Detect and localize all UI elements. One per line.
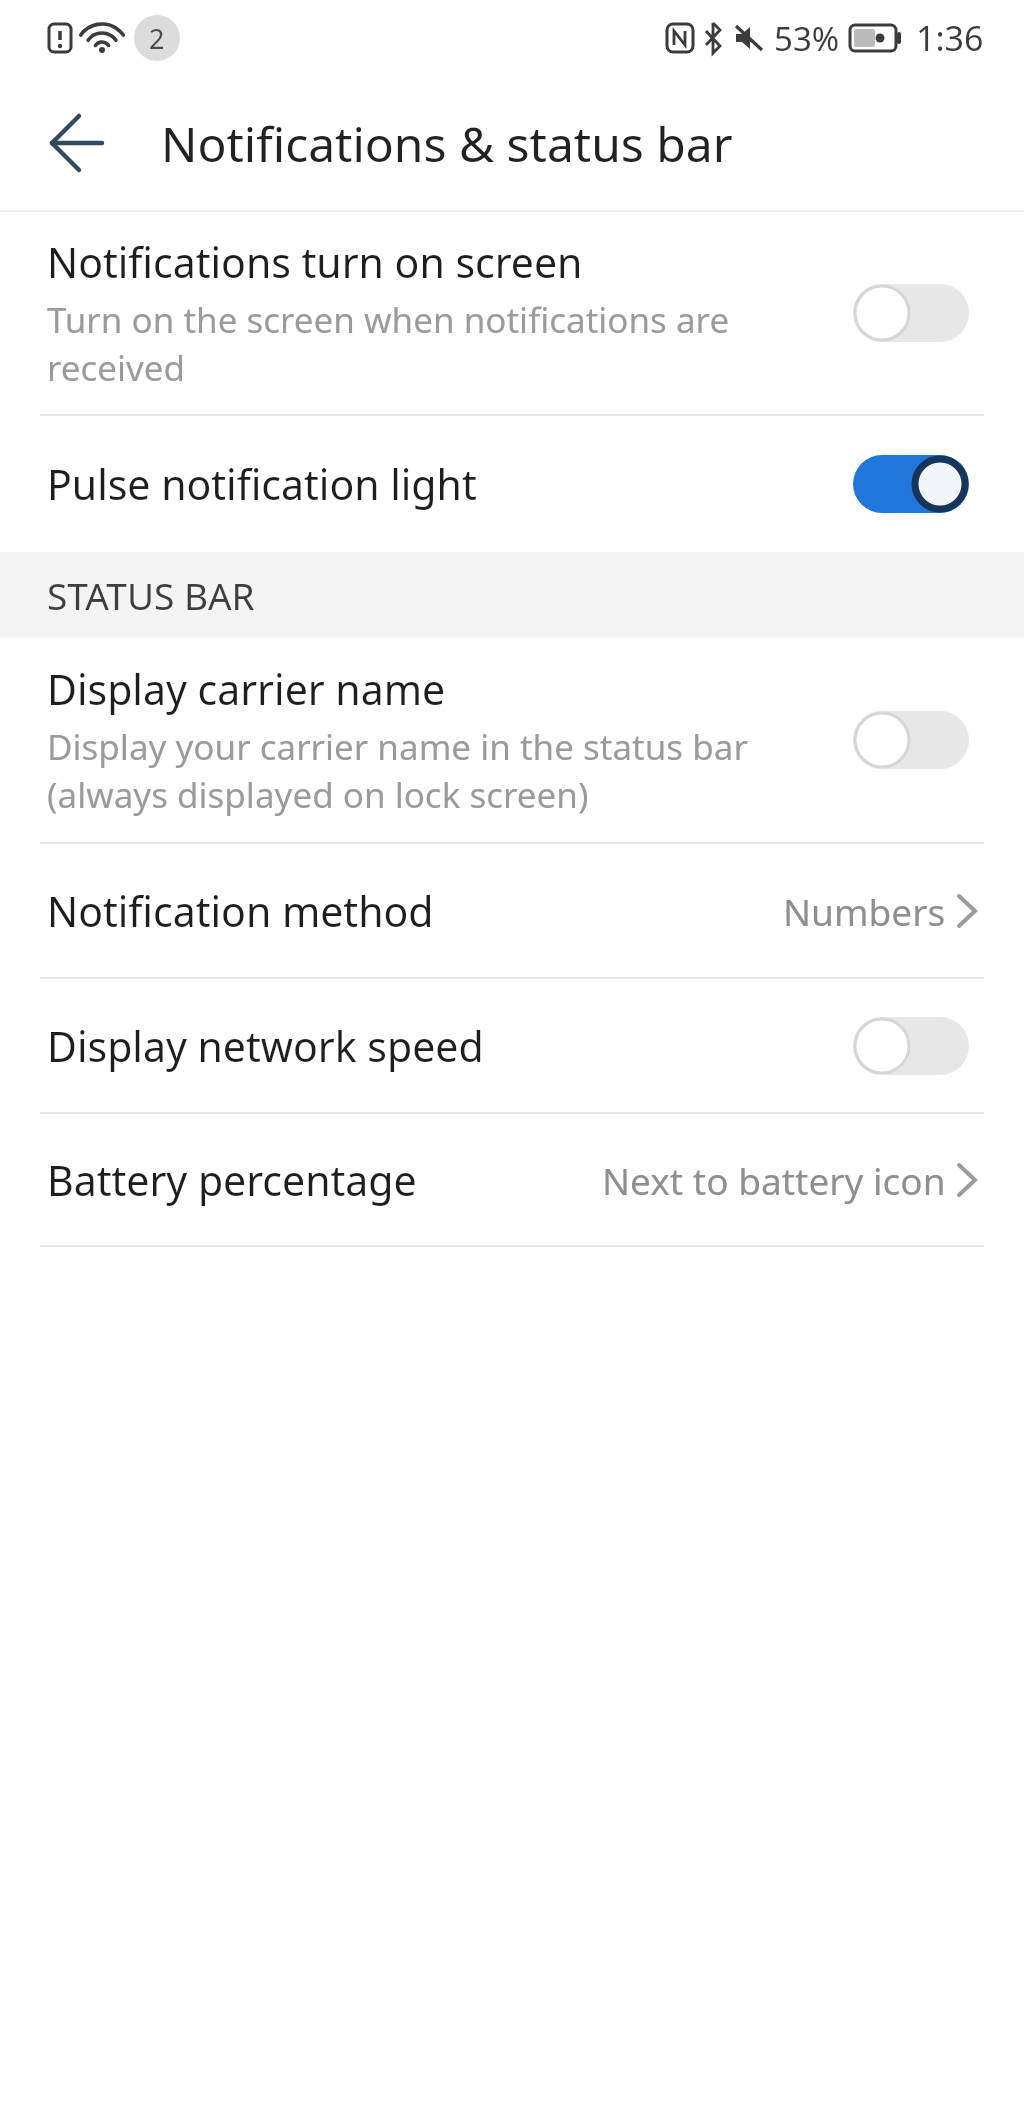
staticText: Display network speed bbox=[47, 1018, 484, 1074]
staticText: Next to battery icon bbox=[602, 1155, 946, 1205]
staticText: Display carrier name bbox=[47, 661, 446, 717]
staticText: Notification method bbox=[47, 883, 434, 939]
staticText: Battery percentage bbox=[47, 1152, 417, 1208]
staticText: Numbers bbox=[783, 886, 946, 936]
button[interactable]: Display network speed bbox=[0, 979, 1024, 1112]
staticText: STATUS BAR bbox=[47, 570, 255, 620]
staticText: 53% bbox=[774, 16, 840, 61]
button[interactable]: Pulse notification light bbox=[0, 416, 1024, 552]
staticText: 2 bbox=[149, 20, 165, 57]
button[interactable]: Display carrier name bbox=[0, 638, 1024, 842]
staticText: Pulse notification light bbox=[47, 456, 477, 512]
staticText: received bbox=[47, 344, 186, 392]
button[interactable] bbox=[852, 1015, 970, 1077]
staticText: Notifications & status bar bbox=[161, 111, 733, 176]
button[interactable] bbox=[852, 282, 970, 344]
staticText: Display your carrier name in the status … bbox=[47, 723, 748, 771]
button[interactable] bbox=[852, 453, 970, 515]
button[interactable]: Battery percentage bbox=[0, 1114, 1024, 1245]
button[interactable] bbox=[50, 115, 106, 171]
button[interactable] bbox=[852, 709, 970, 771]
staticText: Turn on the screen when notifications ar… bbox=[47, 296, 730, 344]
button[interactable]: Notification method bbox=[0, 844, 1024, 977]
button[interactable]: Notifications turn on screen bbox=[0, 212, 1024, 414]
staticText: Notifications turn on screen bbox=[47, 234, 583, 290]
staticText: (always displayed on lock screen) bbox=[47, 771, 589, 819]
staticText: 1:36 bbox=[916, 15, 984, 61]
